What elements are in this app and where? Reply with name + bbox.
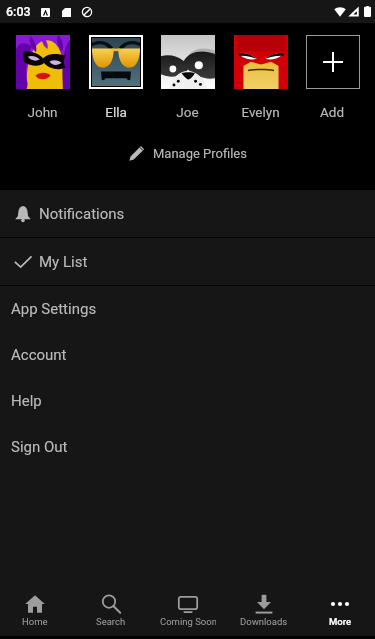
button[interactable]: Account — [0, 332, 375, 378]
button[interactable]: More — [312, 580, 368, 627]
staticText: Manage Profiles — [153, 146, 247, 161]
staticText: Search — [96, 616, 126, 627]
button[interactable]: Evelyn — [233, 35, 288, 120]
staticText: John — [27, 104, 58, 120]
button[interactable]: Ella — [88, 35, 143, 120]
staticText: Home — [22, 616, 48, 627]
button[interactable]: John — [15, 35, 70, 120]
staticText: Ella — [105, 104, 127, 120]
staticText: Add — [320, 104, 345, 120]
staticText: Downloads — [240, 616, 288, 627]
staticText: Notifications — [39, 205, 125, 223]
button[interactable]: Home — [7, 580, 63, 627]
button[interactable]: Sign Out — [0, 424, 375, 470]
staticText: More — [329, 616, 352, 627]
staticText: My List — [39, 253, 88, 271]
button[interactable]: Joe — [160, 35, 215, 120]
button[interactable]: Coming Soon — [160, 580, 216, 627]
staticText: Help — [11, 392, 42, 410]
staticText: Coming Soon — [160, 616, 216, 627]
button[interactable]: Help — [0, 378, 375, 424]
staticText: Joe — [176, 104, 199, 120]
staticText: Account — [11, 346, 67, 364]
staticText: 6:03 — [6, 4, 31, 19]
staticText: Sign Out — [11, 438, 68, 456]
button[interactable]: App Settings — [0, 286, 375, 332]
button[interactable]: Search — [83, 580, 139, 627]
button[interactable]: Add profile — [305, 35, 360, 120]
staticText: Evelyn — [241, 104, 280, 120]
button[interactable]: Notifications — [0, 190, 375, 237]
staticText: App Settings — [11, 300, 97, 318]
button[interactable]: Manage Profiles — [0, 140, 375, 166]
button[interactable]: My List — [0, 238, 375, 285]
button[interactable]: Downloads — [236, 580, 292, 627]
